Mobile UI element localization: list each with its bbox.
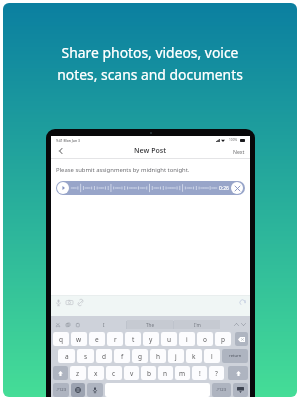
button[interactable]: Play: [56, 181, 245, 195]
button[interactable]: Next: [240, 321, 247, 328]
staticText: The: [146, 322, 154, 328]
button[interactable]: !: [192, 366, 207, 380]
button[interactable]: Paste: [74, 321, 81, 328]
button[interactable]: s: [77, 349, 94, 363]
staticText: z: [76, 369, 80, 378]
staticText: c: [112, 369, 116, 378]
button[interactable]: The: [127, 320, 173, 329]
button[interactable]: Switch keyboard: [71, 383, 85, 397]
staticText: 9:41 Mon Jun 3: [56, 138, 80, 143]
button[interactable]: Play: [57, 182, 69, 194]
button[interactable]: Backspace: [235, 332, 248, 346]
button[interactable]: b: [141, 366, 156, 380]
button[interactable]: I'm: [174, 320, 220, 329]
button[interactable]: q: [53, 332, 69, 346]
button[interactable]: Dictation: [87, 383, 103, 397]
staticText: t: [132, 335, 135, 344]
button[interactable]: Back: [55, 146, 65, 156]
button[interactable]: .?123: [53, 383, 69, 397]
button[interactable]: f: [114, 349, 130, 363]
button[interactable]: l: [204, 349, 220, 363]
staticText: I: [103, 322, 105, 328]
button[interactable]: n: [158, 366, 173, 380]
staticText: e: [95, 335, 99, 344]
button[interactable]: Previous: [233, 321, 240, 328]
button[interactable]: i: [179, 332, 195, 346]
staticText: u: [167, 335, 172, 344]
button[interactable]: g: [132, 349, 148, 363]
staticText: d: [102, 352, 106, 361]
button[interactable]: e: [89, 332, 105, 346]
staticText: i: [186, 335, 188, 344]
staticText: ?: [215, 369, 218, 378]
staticText: return: [229, 353, 242, 359]
button[interactable]: Next: [233, 148, 245, 155]
button[interactable]: v: [124, 366, 139, 380]
button[interactable]: return: [222, 349, 248, 363]
staticText: w: [76, 335, 82, 344]
staticText: .?123: [216, 387, 227, 393]
button[interactable]: Delete recording: [231, 182, 243, 194]
button[interactable]: Camera: [64, 297, 75, 307]
staticText: k: [192, 352, 196, 361]
staticText: s: [84, 352, 88, 361]
button[interactable]: j: [168, 349, 184, 363]
staticText: I'm: [194, 322, 201, 328]
staticText: a: [65, 352, 69, 361]
staticText: !: [199, 369, 201, 378]
button[interactable]: Shift: [53, 366, 68, 380]
button[interactable]: y: [143, 332, 159, 346]
staticText: f: [121, 352, 124, 361]
button[interactable]: o: [197, 332, 213, 346]
button[interactable]: Attach file: [75, 297, 86, 307]
button[interactable]: Record audio: [53, 297, 64, 307]
button[interactable]: m: [175, 366, 190, 380]
button[interactable]: Hide keyboard: [233, 383, 248, 397]
staticText: m: [179, 369, 186, 378]
button[interactable]: .?123: [212, 383, 231, 397]
button[interactable]: Send: [237, 297, 248, 307]
staticText: o: [203, 335, 207, 344]
staticText: r: [114, 335, 117, 344]
button[interactable]: h: [150, 349, 166, 363]
staticText: New Post: [134, 146, 167, 156]
staticText: j: [175, 352, 177, 361]
button[interactable]: x: [88, 366, 104, 380]
button[interactable]: Cut: [54, 321, 61, 328]
button[interactable]: I: [81, 320, 126, 329]
staticText: Please submit assignments by midnight to…: [56, 166, 190, 174]
staticText: g: [138, 352, 142, 361]
staticText: 100%: [229, 138, 238, 142]
button[interactable]: ?: [209, 366, 224, 380]
staticText: Share photos, videos, voice notes, scans…: [21, 43, 279, 84]
button[interactable]: k: [186, 349, 202, 363]
staticText: n: [163, 369, 168, 378]
staticText: h: [156, 352, 161, 361]
staticText: 0:26: [219, 185, 229, 192]
button[interactable]: p: [215, 332, 231, 346]
button[interactable]: t: [125, 332, 141, 346]
button[interactable]: Copy: [64, 321, 71, 328]
button[interactable]: z: [70, 366, 86, 380]
button[interactable]: d: [96, 349, 112, 363]
staticText: p: [221, 335, 225, 344]
button[interactable]: u: [161, 332, 177, 346]
staticText: .?123: [56, 387, 67, 393]
staticText: v: [130, 369, 134, 378]
button[interactable]: Shift: [228, 366, 248, 380]
button[interactable]: a: [58, 349, 75, 363]
button[interactable]: w: [71, 332, 87, 346]
staticText: l: [211, 352, 213, 361]
staticText: b: [147, 369, 151, 378]
staticText: q: [59, 335, 63, 344]
staticText: y: [149, 335, 153, 344]
button[interactable]: r: [107, 332, 123, 346]
button[interactable]: c: [106, 366, 122, 380]
staticText: Next: [233, 148, 245, 155]
staticText: x: [94, 369, 98, 378]
